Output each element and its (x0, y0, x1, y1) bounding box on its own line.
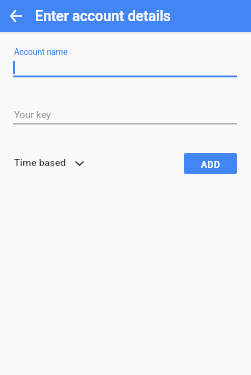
staticText: ADD (201, 160, 221, 171)
staticText: Enter account details (35, 8, 171, 25)
button[interactable]: Navigate up (0, 0, 32, 32)
button[interactable]: Time based (13, 155, 85, 171)
staticText: Time based (14, 157, 66, 169)
staticText: Your key (14, 109, 51, 120)
staticText: Account name (14, 47, 68, 57)
button[interactable]: ADD (184, 153, 237, 174)
